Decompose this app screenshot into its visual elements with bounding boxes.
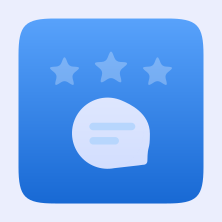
button[interactable]: Reviews app icon (0, 0, 222, 222)
